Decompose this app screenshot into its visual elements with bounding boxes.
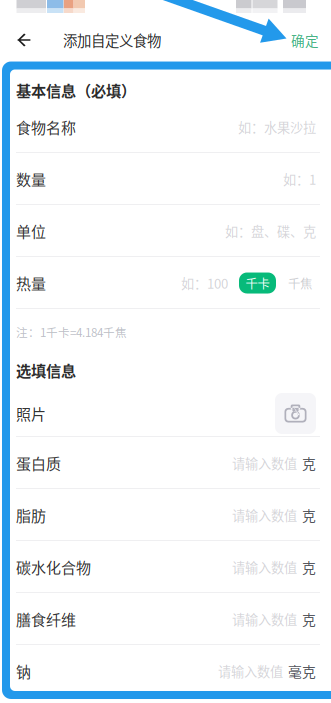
- button[interactable]: 单位: [0, 205, 331, 257]
- button[interactable]: 上传照片: [275, 393, 316, 434]
- button[interactable]: 照片: [0, 390, 331, 437]
- button[interactable]: 数量: [0, 153, 331, 205]
- staticText: 钠: [16, 660, 31, 682]
- staticText: 膳食纤维: [16, 608, 76, 630]
- staticText: 请输入数值: [232, 505, 297, 524]
- staticText: 请输入数值: [218, 661, 283, 680]
- staticText: 千焦: [288, 274, 312, 292]
- staticText: 食物名称: [16, 116, 76, 138]
- staticText: 毫克: [288, 661, 316, 681]
- button[interactable]: 食物名称: [0, 101, 331, 153]
- button[interactable]: 返回: [8, 22, 40, 58]
- staticText: 脂肪: [16, 504, 46, 526]
- staticText: 克: [302, 453, 316, 473]
- button[interactable]: 碳水化合物: [0, 541, 331, 593]
- button[interactable]: 确定: [291, 22, 331, 58]
- staticText: 确定: [291, 30, 319, 50]
- staticText: 单位: [16, 220, 46, 242]
- staticText: 选填信息: [16, 359, 76, 381]
- staticText: 如：1: [283, 169, 316, 188]
- button[interactable]: 热量: [0, 257, 331, 309]
- staticText: 碳水化合物: [16, 556, 91, 578]
- button[interactable]: 千卡: [239, 272, 276, 293]
- staticText: 注：1千卡=4.184千焦: [16, 324, 127, 340]
- staticText: 克: [302, 609, 316, 629]
- staticText: 千卡: [245, 274, 269, 292]
- staticText: 蛋白质: [16, 452, 61, 474]
- staticText: 如：水果沙拉: [238, 117, 316, 136]
- staticText: 请输入数值: [232, 557, 297, 576]
- staticText: 如：100: [181, 273, 228, 292]
- button[interactable]: 蛋白质: [0, 437, 331, 489]
- button[interactable]: 膳食纤维: [0, 593, 331, 645]
- staticText: 克: [302, 505, 316, 525]
- button[interactable]: 脂肪: [0, 489, 331, 541]
- staticText: 请输入数值: [232, 453, 297, 472]
- staticText: 添加自定义食物: [63, 30, 161, 50]
- staticText: 基本信息（必填）: [16, 79, 136, 101]
- button[interactable]: 千焦: [276, 272, 316, 293]
- staticText: 请输入数值: [232, 609, 297, 628]
- staticText: 热量: [16, 272, 46, 294]
- staticText: 克: [302, 557, 316, 577]
- staticText: 照片: [16, 403, 46, 424]
- staticText: 数量: [16, 168, 46, 190]
- staticText: 如：盘、碟、克: [225, 221, 316, 240]
- button[interactable]: 钠: [0, 645, 331, 697]
